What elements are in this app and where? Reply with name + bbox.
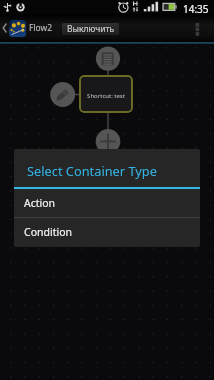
button[interactable]: Action bbox=[14, 189, 200, 217]
button[interactable]: Flow2 bbox=[0, 14, 58, 42]
staticText: Выключить bbox=[67, 23, 115, 35]
staticText: Shortcut: test bbox=[87, 92, 125, 100]
button[interactable]: Выключить bbox=[62, 23, 119, 35]
staticText: 14:35 bbox=[183, 2, 209, 16]
button[interactable]: More options bbox=[189, 14, 207, 42]
button[interactable]: Shortcut: test bbox=[79, 75, 133, 113]
staticText: Flow2 bbox=[29, 22, 53, 34]
button[interactable]: Condition bbox=[14, 218, 200, 246]
staticText: Condition bbox=[24, 225, 72, 239]
staticText: Select Container Type bbox=[27, 162, 157, 179]
staticText: Action bbox=[24, 196, 56, 210]
